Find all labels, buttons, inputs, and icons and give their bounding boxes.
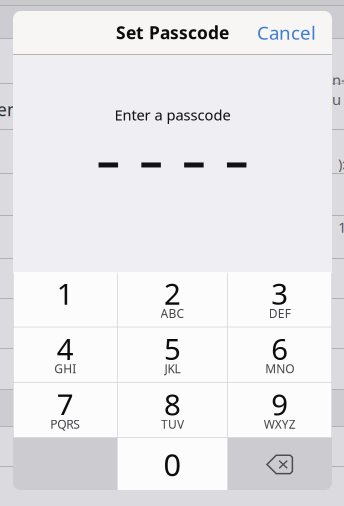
button[interactable]: 1 <box>14 272 117 327</box>
button[interactable]: 4 <box>14 327 117 382</box>
staticText: 2 <box>164 274 181 313</box>
button[interactable]: 2 <box>118 272 227 327</box>
staticText: ABC <box>160 305 184 321</box>
button[interactable]: 5 <box>118 327 227 382</box>
staticText: Enter a passcode <box>114 105 230 124</box>
staticText: 9 <box>271 384 288 423</box>
staticText: JKL <box>164 361 180 377</box>
staticText: 1 <box>338 217 344 237</box>
staticText: 8 <box>164 384 181 423</box>
button[interactable]: 9 <box>228 383 331 437</box>
staticText: 3 <box>271 274 288 313</box>
button[interactable]: 6 <box>228 327 331 382</box>
staticText: 7 <box>57 384 74 423</box>
button[interactable]: 7 <box>14 383 117 437</box>
button[interactable]: Cancel <box>257 20 332 45</box>
staticText: TUV <box>161 416 184 432</box>
staticText: GHI <box>54 361 76 377</box>
staticText: DEF <box>269 305 291 321</box>
button[interactable]: Delete <box>228 438 331 491</box>
staticText: Cancel <box>257 20 316 45</box>
staticText: 0 <box>163 444 181 485</box>
staticText: 5 <box>164 329 181 368</box>
staticText: en <box>0 98 18 121</box>
button[interactable]: 0 <box>118 438 227 491</box>
staticText: nu <box>332 70 344 109</box>
button[interactable]: 8 <box>118 383 227 437</box>
staticText: Set Passcode <box>116 21 229 44</box>
staticText: MNO <box>265 361 294 377</box>
staticText: 4 <box>57 329 74 368</box>
button[interactable]: 3 <box>228 272 331 327</box>
staticText: 1 <box>57 274 74 313</box>
staticText: WXYZ <box>264 416 296 432</box>
staticText: ): <box>338 154 344 173</box>
staticText: PQRS <box>50 416 80 432</box>
staticText: 6 <box>271 329 288 368</box>
